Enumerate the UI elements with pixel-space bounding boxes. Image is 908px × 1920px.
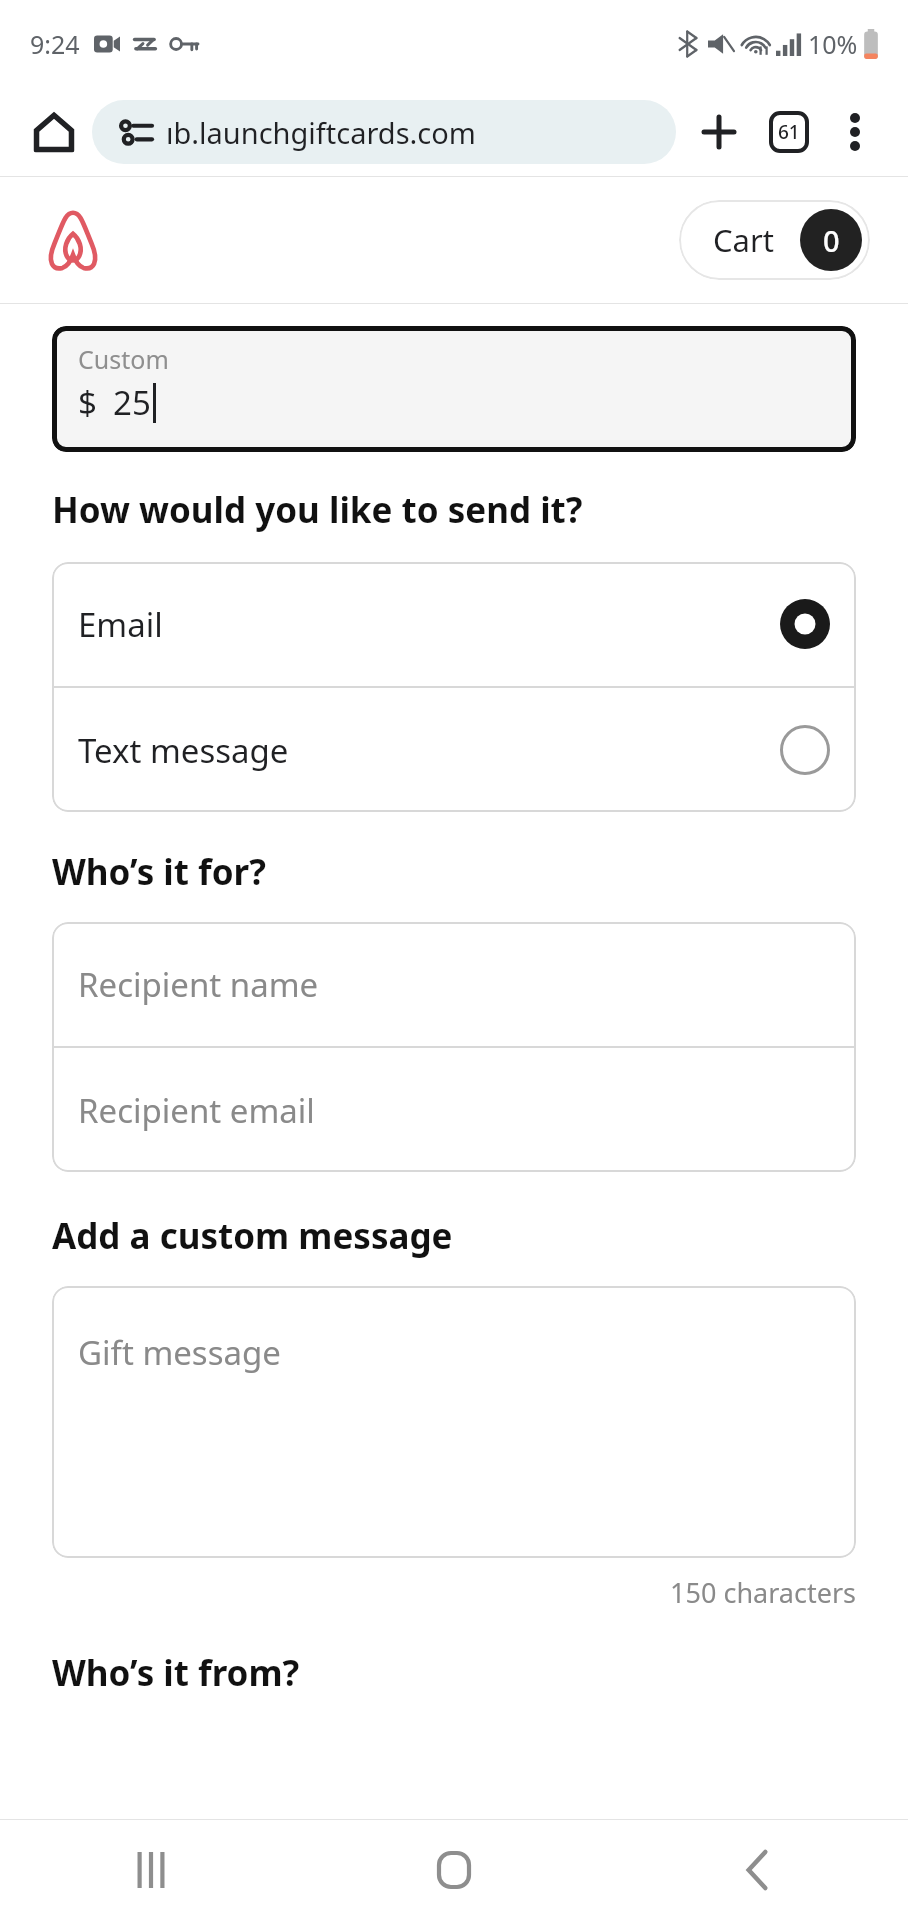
staticText: 25 [113, 380, 151, 425]
staticText: Who’s it for? [52, 848, 266, 896]
staticText: 10% [808, 27, 858, 61]
staticText: 0 [823, 221, 840, 260]
button[interactable]: More options [828, 105, 882, 159]
staticText: 9:24 [30, 27, 80, 61]
staticText: 61 [778, 119, 800, 145]
staticText: How would you like to send it? [52, 486, 583, 534]
button[interactable]: ıb.launchgiftcards.com [92, 100, 676, 164]
staticText: Cart [713, 219, 774, 261]
button[interactable]: Recents [0, 1820, 302, 1920]
button[interactable]: Home [26, 104, 82, 160]
staticText: $ [78, 380, 97, 425]
staticText: Recipient email [78, 1088, 315, 1133]
staticText: Who’s it from? [52, 1649, 300, 1697]
staticText: Email [78, 602, 163, 647]
button[interactable]: Cart [679, 200, 870, 280]
button[interactable]: Recipient name [52, 922, 856, 1046]
staticText: ıb.launchgiftcards.com [166, 113, 476, 152]
button[interactable]: Custom [52, 326, 856, 452]
button[interactable]: Home [302, 1820, 605, 1920]
button[interactable]: Email [52, 562, 856, 686]
button[interactable]: New tab [690, 103, 748, 161]
staticText: Recipient name [78, 962, 319, 1007]
staticText: Custom [78, 342, 169, 376]
button[interactable]: Text message [52, 688, 856, 812]
staticText: 150 characters [52, 1574, 856, 1611]
button[interactable]: Back [605, 1820, 908, 1920]
button[interactable]: Gift message [52, 1286, 856, 1558]
button[interactable]: Recipient email [52, 1048, 856, 1172]
staticText: Gift message [78, 1330, 281, 1375]
staticText: Add a custom message [52, 1212, 453, 1260]
staticText: Text message [78, 728, 289, 773]
button[interactable]: Airbnb home [38, 205, 108, 275]
button[interactable]: Tabs, 61 open [760, 103, 818, 161]
